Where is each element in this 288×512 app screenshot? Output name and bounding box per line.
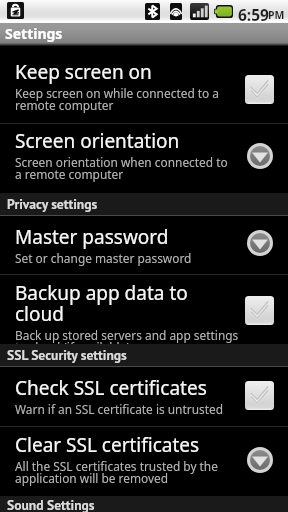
staticText: PM <box>268 8 285 22</box>
button[interactable]: Check SSL certificates <box>0 367 288 426</box>
staticText: Screen orientation when connected to a r… <box>15 154 228 182</box>
staticText: Sound Settings <box>7 496 95 512</box>
button[interactable]: Open options <box>247 143 273 169</box>
staticText: All the SSL certificates trusted by the … <box>15 458 218 486</box>
button[interactable]: Master password <box>0 216 288 274</box>
staticText: Back up stored servers and app settings … <box>15 327 239 344</box>
button[interactable]: Toggle setting <box>245 75 274 104</box>
button[interactable]: Backup app data to cloud <box>0 275 288 344</box>
staticText: Keep screen on <box>15 59 152 85</box>
button[interactable]: Toggle setting <box>245 296 274 325</box>
other: Notification <box>7 2 24 19</box>
button[interactable]: Open options <box>247 230 273 256</box>
staticText: Screen orientation <box>15 128 180 154</box>
staticText: Privacy settings <box>7 195 98 213</box>
staticText: 6:59 <box>238 4 269 23</box>
staticText: Master password <box>15 224 169 250</box>
button[interactable]: Keep screen on <box>0 54 288 123</box>
staticText: Backup app data to cloud <box>15 280 241 327</box>
staticText: Keep screen on while connected to a remo… <box>15 85 220 113</box>
staticText: Warn if an SSL certificate is untrusted <box>15 401 224 417</box>
button[interactable]: Screen orientation <box>0 124 288 193</box>
staticText: Clear SSL certificates <box>15 432 200 458</box>
button[interactable]: Clear SSL certificates <box>0 427 288 496</box>
staticText: SSL Security settings <box>7 346 127 364</box>
staticText: Settings <box>5 24 63 43</box>
staticText: Set or change master password <box>15 250 192 266</box>
button[interactable]: Open options <box>247 447 273 473</box>
button[interactable]: Toggle setting <box>245 381 274 410</box>
staticText: Check SSL certificates <box>15 375 207 401</box>
